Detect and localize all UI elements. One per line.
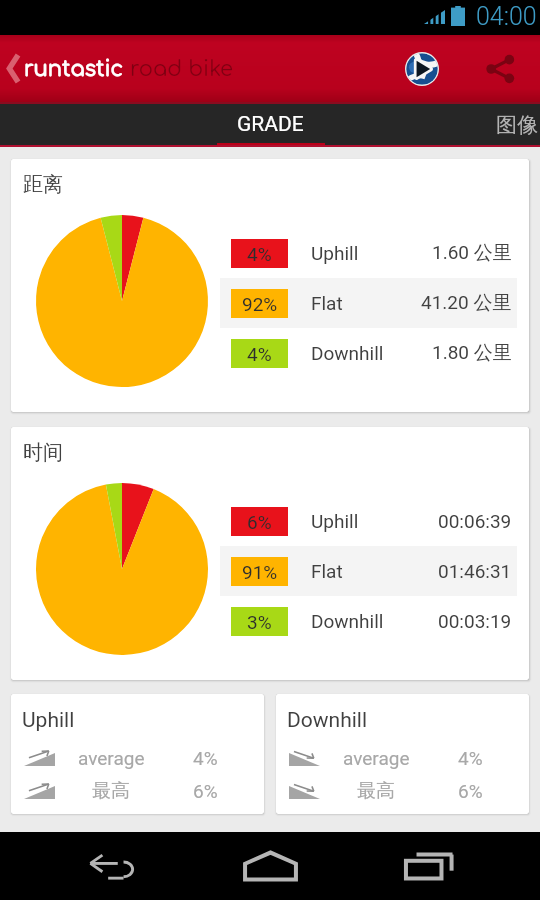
staticText: road bike	[130, 57, 233, 80]
staticText: 41.20 公里	[421, 291, 512, 315]
button[interactable]: 92%	[220, 278, 517, 328]
button[interactable]: 4%	[220, 328, 517, 378]
staticText: 6%	[247, 511, 272, 533]
button[interactable]: 图像	[496, 102, 540, 147]
staticText: 最高	[92, 779, 130, 803]
staticText: Flat	[311, 292, 343, 314]
button[interactable]: 6%	[220, 496, 517, 546]
staticText: 3%	[247, 611, 272, 633]
staticText: 4%	[193, 747, 218, 769]
staticText: Flat	[311, 560, 343, 582]
staticText: 时间	[23, 440, 63, 465]
staticText: Downhill	[311, 342, 384, 364]
button[interactable]: Share	[474, 43, 526, 95]
button[interactable]: GRADE	[208, 102, 333, 147]
button[interactable]: Live tracking	[396, 43, 448, 95]
button[interactable]: Recents	[393, 832, 465, 900]
staticText: 01:46:31	[438, 560, 512, 582]
staticText: Downhill	[287, 708, 368, 733]
staticText: 最高	[357, 779, 395, 803]
staticText: 图像	[496, 112, 538, 138]
staticText: 1.60 公里	[432, 241, 512, 265]
button[interactable]: 3%	[220, 596, 517, 646]
staticText: 1.80 公里	[432, 341, 512, 365]
staticText: 4%	[247, 243, 272, 265]
staticText: average	[78, 747, 145, 769]
staticText: 6%	[458, 780, 483, 802]
button[interactable]: Home	[234, 832, 306, 900]
staticText: 91%	[242, 561, 278, 583]
staticText: 6%	[193, 780, 218, 802]
staticText: Uphill	[311, 242, 359, 264]
button[interactable]: Back	[76, 832, 148, 900]
staticText: Downhill	[311, 610, 384, 632]
staticText: 00:03:19	[438, 610, 512, 632]
staticText: 00:06:39	[438, 510, 512, 532]
staticText: 4%	[247, 343, 272, 365]
button[interactable]: 91%	[220, 546, 517, 596]
button[interactable]: 4%	[220, 228, 517, 278]
staticText: Uphill	[311, 510, 359, 532]
staticText: 距离	[23, 172, 63, 197]
staticText: GRADE	[237, 112, 304, 137]
staticText: Uphill	[22, 708, 75, 733]
staticText: 4%	[458, 747, 483, 769]
staticText: runtastic	[24, 57, 124, 80]
staticText: 04:00	[476, 2, 537, 31]
staticText: 92%	[242, 293, 278, 315]
staticText: average	[343, 747, 410, 769]
